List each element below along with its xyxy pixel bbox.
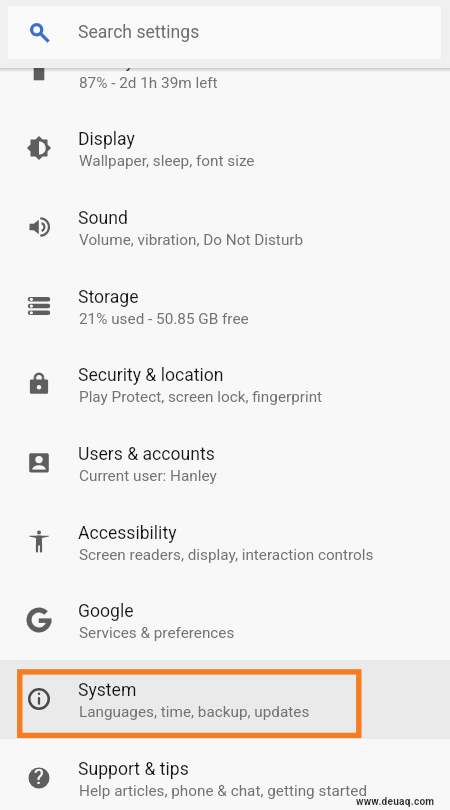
staticText: Help articles, phone & chat, getting sta…	[79, 782, 368, 800]
staticText: Volume, vibration, Do Not Disturb	[79, 231, 304, 249]
button[interactable]: Accessibility	[0, 501, 450, 580]
staticText: Google	[78, 601, 134, 622]
staticText: ?	[34, 765, 44, 789]
button[interactable]: System	[0, 658, 450, 737]
staticText: Play Protect, screen lock, fingerprint	[79, 388, 323, 406]
button[interactable]: Users & accounts	[0, 422, 450, 501]
button[interactable]: Search settings	[8, 6, 441, 59]
staticText: Search settings	[78, 22, 200, 43]
staticText: Users & accounts	[78, 444, 215, 465]
button[interactable]: Battery	[0, 29, 450, 108]
staticText: Support & tips	[78, 759, 189, 780]
button[interactable]: Security & location	[0, 343, 450, 422]
staticText: Sound	[78, 208, 128, 229]
staticText: System	[78, 680, 137, 701]
staticText: Languages, time, backup, updates	[79, 703, 310, 721]
staticText: Accessibility	[78, 523, 177, 544]
button[interactable]: Google	[0, 579, 450, 658]
button[interactable]: Storage	[0, 265, 450, 344]
staticText: www.deuaq.com	[356, 796, 435, 808]
staticText: Storage	[78, 287, 139, 308]
staticText: Screen readers, display, interaction con…	[79, 546, 374, 564]
button[interactable]: Display	[0, 107, 450, 186]
staticText: Current user: Hanley	[79, 467, 217, 485]
staticText: Battery	[78, 51, 134, 72]
staticText: Display	[78, 129, 135, 150]
button[interactable]: ?	[0, 737, 450, 810]
staticText: Services & preferences	[79, 624, 235, 642]
staticText: Wallpaper, sleep, font size	[79, 152, 255, 170]
staticText: 87% - 2d 1h 39m left	[79, 74, 218, 92]
staticText: 21% used - 50.85 GB free	[79, 310, 249, 328]
staticText: Security & location	[78, 365, 224, 386]
button[interactable]: Sound	[0, 186, 450, 265]
